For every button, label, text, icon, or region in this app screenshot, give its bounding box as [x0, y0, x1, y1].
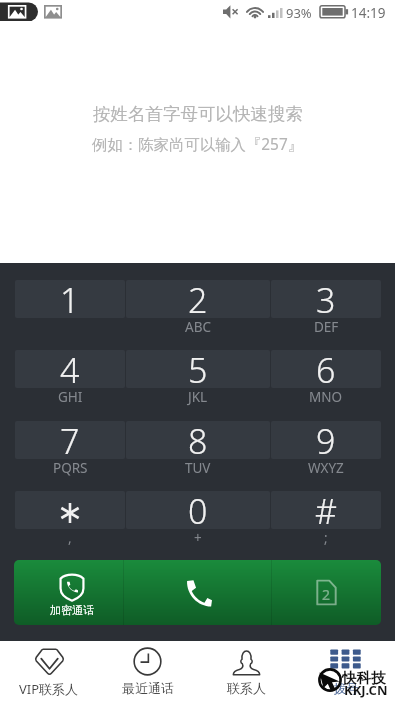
staticText: 拨号	[333, 680, 359, 696]
staticText: DEF	[314, 318, 339, 336]
button[interactable]: 7	[15, 421, 125, 459]
button[interactable]: 8	[126, 421, 270, 459]
button[interactable]: 联系人	[197, 641, 296, 702]
staticText: #	[315, 491, 337, 526]
button[interactable]: #	[271, 491, 381, 529]
staticText: MNO	[309, 388, 343, 406]
staticText: GHI	[58, 388, 83, 406]
staticText: 0	[188, 491, 208, 526]
staticText: 加密通话	[50, 603, 94, 617]
staticText: +	[194, 529, 202, 547]
staticText: 按姓名首字母可以快速搜索	[93, 103, 303, 125]
button[interactable]: 3	[271, 280, 381, 318]
staticText: JKL	[188, 388, 208, 406]
button[interactable]: Call	[124, 560, 271, 625]
staticText: 例如：陈家尚可以输入『257』	[92, 134, 304, 155]
staticText: 8	[188, 421, 208, 456]
staticText: KKJ.CN	[344, 681, 388, 699]
button[interactable]: 最近通话	[98, 641, 197, 702]
staticText: ,	[68, 529, 72, 547]
staticText: 最近通话	[122, 680, 174, 696]
staticText: ;	[324, 529, 328, 547]
staticText: 快科技	[342, 669, 386, 687]
button[interactable]: VIP联系人	[0, 641, 98, 702]
staticText: 联系人	[227, 680, 266, 696]
button[interactable]: 9	[271, 421, 381, 459]
staticText: 9	[316, 421, 336, 456]
staticText: WXYZ	[308, 459, 344, 477]
button[interactable]: 2	[126, 280, 270, 318]
button[interactable]	[15, 491, 125, 529]
button[interactable]: 5	[126, 350, 270, 388]
staticText: 2	[322, 585, 331, 604]
button[interactable]: 加密通话	[14, 560, 123, 625]
staticText: 6	[316, 350, 336, 385]
staticText: PQRS	[53, 459, 88, 477]
button[interactable]: 1	[15, 280, 125, 318]
staticText: ABC	[185, 318, 211, 336]
staticText: 4	[60, 350, 80, 385]
button[interactable]: 4	[15, 350, 125, 388]
button[interactable]: SIM 2	[272, 560, 381, 625]
button[interactable]: 0	[126, 491, 270, 529]
staticText: 7	[60, 421, 80, 456]
staticText: 5	[188, 350, 208, 385]
staticText: 14:19	[351, 4, 386, 22]
staticText: 2	[188, 280, 208, 315]
button[interactable]: 拨号	[296, 641, 395, 702]
staticText: 3	[316, 280, 336, 315]
staticText: VIP联系人	[19, 680, 79, 698]
staticText: 93%	[286, 4, 312, 22]
staticText: TUV	[185, 459, 211, 477]
staticText: 1	[60, 280, 80, 315]
button[interactable]: 6	[271, 350, 381, 388]
